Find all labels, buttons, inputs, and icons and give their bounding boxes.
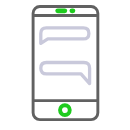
button[interactable]: Messaging on device <box>0 0 130 130</box>
